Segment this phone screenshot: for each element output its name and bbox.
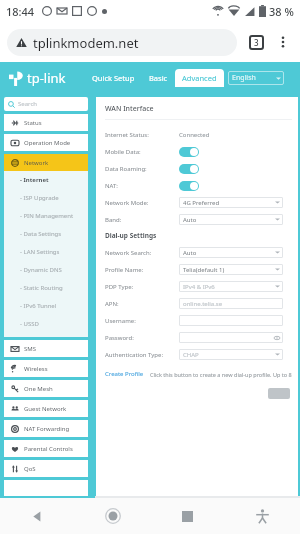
staticText: - Data Settings: [20, 230, 62, 238]
button[interactable]: More options: [273, 32, 293, 52]
staticText: Password:: [105, 334, 134, 342]
button[interactable]: CHAP: [179, 349, 283, 360]
staticText: Search: [18, 100, 37, 108]
staticText: - Dynamic DNS: [20, 266, 62, 274]
staticText: Mobile Data:: [105, 148, 141, 156]
button[interactable]: Operation Mode: [4, 134, 88, 151]
staticText: Network Mode:: [105, 199, 149, 207]
button[interactable]: 4G Preferred: [179, 197, 283, 208]
button[interactable]: Search: [4, 97, 88, 111]
staticText: - LAN Settings: [20, 248, 60, 256]
button[interactable]: - Internet: [4, 171, 88, 189]
button[interactable]: Create Profile: [105, 370, 144, 378]
staticText: - ISP Upgrade: [20, 194, 59, 202]
staticText: tp-link: [27, 69, 66, 87]
button[interactable]: SMS: [4, 340, 88, 357]
staticText: 3: [254, 37, 259, 48]
staticText: Parental Controls: [24, 445, 73, 453]
button[interactable]: Parental Controls: [4, 440, 88, 457]
button[interactable]: Guest Network: [4, 400, 88, 417]
staticText: APN:: [105, 300, 119, 308]
staticText: - USSD: [20, 320, 39, 328]
staticText: Authentication Type:: [105, 351, 164, 359]
button[interactable]: - ISP Upgrade: [4, 189, 88, 207]
button[interactable]: Toggle: [179, 164, 199, 174]
button[interactable]: Telia(default 1): [179, 264, 283, 275]
staticText: Auto: [183, 216, 275, 224]
button[interactable]: Save: [268, 388, 290, 399]
button[interactable]: - USSD: [4, 315, 88, 333]
button[interactable]: - Static Routing: [4, 279, 88, 297]
button[interactable]: Wireless: [4, 360, 88, 377]
staticText: SMS: [24, 345, 37, 353]
button[interactable]: One Mesh: [4, 380, 88, 397]
staticText: NAT:: [105, 182, 118, 190]
button[interactable]: QoS: [4, 460, 88, 477]
staticText: Click this button to create a new dial-u…: [150, 371, 292, 378]
staticText: - Internet: [20, 176, 49, 184]
button[interactable]: Recent apps: [150, 498, 225, 534]
button[interactable]: Auto: [179, 247, 283, 258]
staticText: Advanced: [182, 73, 217, 83]
button[interactable]: Tabs: [247, 33, 265, 51]
button[interactable]: Network: [4, 154, 88, 171]
button[interactable]: Toggle: [179, 147, 199, 157]
button[interactable]: - PIN Management: [4, 207, 88, 225]
button[interactable]: Back: [0, 498, 75, 534]
staticText: NAT Forwarding: [24, 425, 70, 433]
button[interactable]: - LAN Settings: [4, 243, 88, 261]
button[interactable]: Basic: [142, 69, 175, 87]
button[interactable]: - Dynamic DNS: [4, 261, 88, 279]
button[interactable]: NAT Forwarding: [4, 420, 88, 437]
staticText: Band:: [105, 216, 122, 224]
staticText: CHAP: [183, 351, 275, 359]
staticText: Auto: [183, 249, 275, 257]
button[interactable]: English: [228, 71, 284, 85]
staticText: tplinkmodem.net: [33, 34, 139, 52]
staticText: 18:44: [6, 4, 35, 19]
button[interactable]: IPv4 & IPv6: [179, 281, 283, 292]
staticText: Operation Mode: [24, 139, 71, 147]
staticText: Network Search:: [105, 249, 152, 257]
staticText: One Mesh: [24, 385, 53, 393]
staticText: Status: [24, 119, 42, 127]
staticText: - Static Routing: [20, 284, 63, 292]
staticText: Data Roaming:: [105, 165, 147, 173]
button[interactable]: [179, 332, 283, 343]
staticText: Internet Status:: [105, 131, 149, 139]
button[interactable]: - IPv6 Tunnel: [4, 297, 88, 315]
button[interactable]: Quick Setup: [85, 69, 142, 87]
button[interactable]: Auto: [179, 214, 283, 225]
staticText: 4G Preferred: [183, 199, 275, 207]
staticText: 38 %: [269, 4, 294, 19]
staticText: WAN Interface: [105, 104, 154, 114]
button[interactable]: Status: [4, 114, 88, 131]
button[interactable]: Home: [75, 498, 150, 534]
staticText: Network: [24, 159, 49, 167]
staticText: Quick Setup: [92, 73, 135, 83]
staticText: Wireless: [24, 365, 48, 373]
staticText: Connected: [179, 131, 210, 139]
button[interactable]: [179, 315, 283, 326]
staticText: Dial-up Settings: [105, 231, 157, 240]
staticText: IPv4 & IPv6: [183, 283, 275, 291]
staticText: Username:: [105, 317, 136, 325]
staticText: Guest Network: [24, 405, 67, 413]
button[interactable]: Advanced: [175, 69, 224, 87]
button[interactable]: online.telia.se: [179, 298, 283, 309]
staticText: QoS: [24, 465, 36, 473]
button[interactable]: tplinkmodem.net: [7, 29, 237, 56]
staticText: Telia(default 1): [183, 266, 275, 274]
button[interactable]: Accessibility: [225, 498, 300, 534]
staticText: English: [232, 73, 256, 83]
staticText: Basic: [149, 73, 168, 83]
staticText: online.telia.se: [183, 300, 280, 308]
staticText: - PIN Management: [20, 212, 74, 220]
staticText: Profile Name:: [105, 266, 144, 274]
staticText: PDP Type:: [105, 283, 134, 291]
button[interactable]: - Data Settings: [4, 225, 88, 243]
button[interactable]: Toggle: [179, 181, 199, 191]
